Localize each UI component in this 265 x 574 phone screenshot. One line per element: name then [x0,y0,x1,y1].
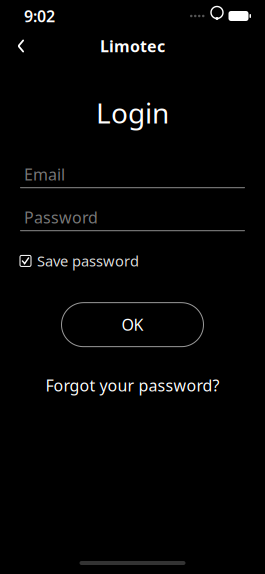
staticText: Limotec [100,35,165,57]
staticText: Save password [37,251,139,271]
button[interactable]: Forgot your password? [35,369,229,402]
button[interactable]: Save password [20,247,145,275]
button[interactable]: OK [61,303,203,347]
staticText: OK [121,314,143,335]
staticText: Email [24,164,65,185]
staticText: 9:02 [24,5,55,27]
staticText: Forgot your password? [45,375,219,396]
staticText: Password [24,207,98,228]
staticText: Login [96,94,169,131]
button[interactable]: Back [6,31,36,61]
